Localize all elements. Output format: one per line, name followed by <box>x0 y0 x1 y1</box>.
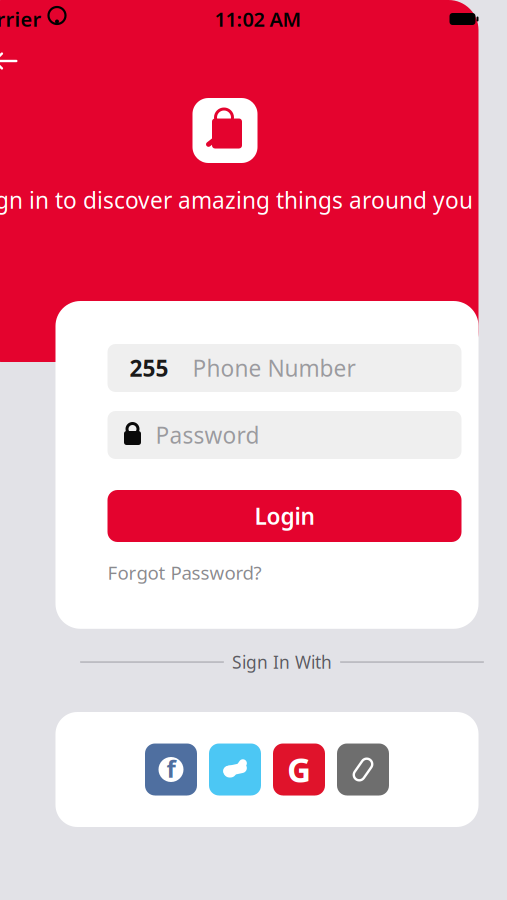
staticText: Carrier <box>0 6 41 32</box>
staticText: Login <box>254 501 314 531</box>
staticText: Sign in to discover amazing things aroun… <box>0 185 473 215</box>
button[interactable]: Password <box>107 411 461 459</box>
staticText: f <box>166 753 175 784</box>
staticText: Phone Number <box>192 353 355 383</box>
button[interactable]: 255 <box>107 344 461 392</box>
button[interactable]: Sign in with Facebook <box>145 743 197 795</box>
button[interactable]: Sign in with Twitter <box>209 743 261 795</box>
staticText: Forgot Password? <box>107 560 261 585</box>
button[interactable]: Sign in with Google <box>273 743 325 795</box>
staticText: 11:02 AM <box>214 6 301 32</box>
button[interactable]: Back <box>0 38 28 84</box>
button[interactable]: Forgot Password? <box>107 560 261 585</box>
button[interactable]: Login <box>107 490 461 542</box>
button[interactable]: Sign in with phone number <box>337 743 389 795</box>
staticText: Sign In With <box>232 650 332 673</box>
staticText: 255 <box>129 353 168 383</box>
staticText: Password <box>155 420 259 450</box>
staticText: G <box>287 747 311 792</box>
